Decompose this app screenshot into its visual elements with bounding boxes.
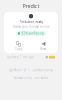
- staticText: Estimates only · not advice: [13, 76, 48, 80]
- staticText: Review your forecast below: [13, 25, 49, 28]
- button[interactable]: Copy: [6, 42, 31, 51]
- staticText: Model v2.1 · updated today: [13, 68, 52, 72]
- button[interactable]: Share: [31, 42, 56, 51]
- staticText: Updated 2 min ago: [7, 55, 34, 59]
- staticText: Copy: [15, 47, 22, 51]
- staticText: Predict: [22, 2, 39, 10]
- staticText: Prediction ready: [19, 20, 42, 24]
- staticText: Share: [40, 47, 47, 51]
- staticText: 92% confidence: [21, 32, 44, 35]
